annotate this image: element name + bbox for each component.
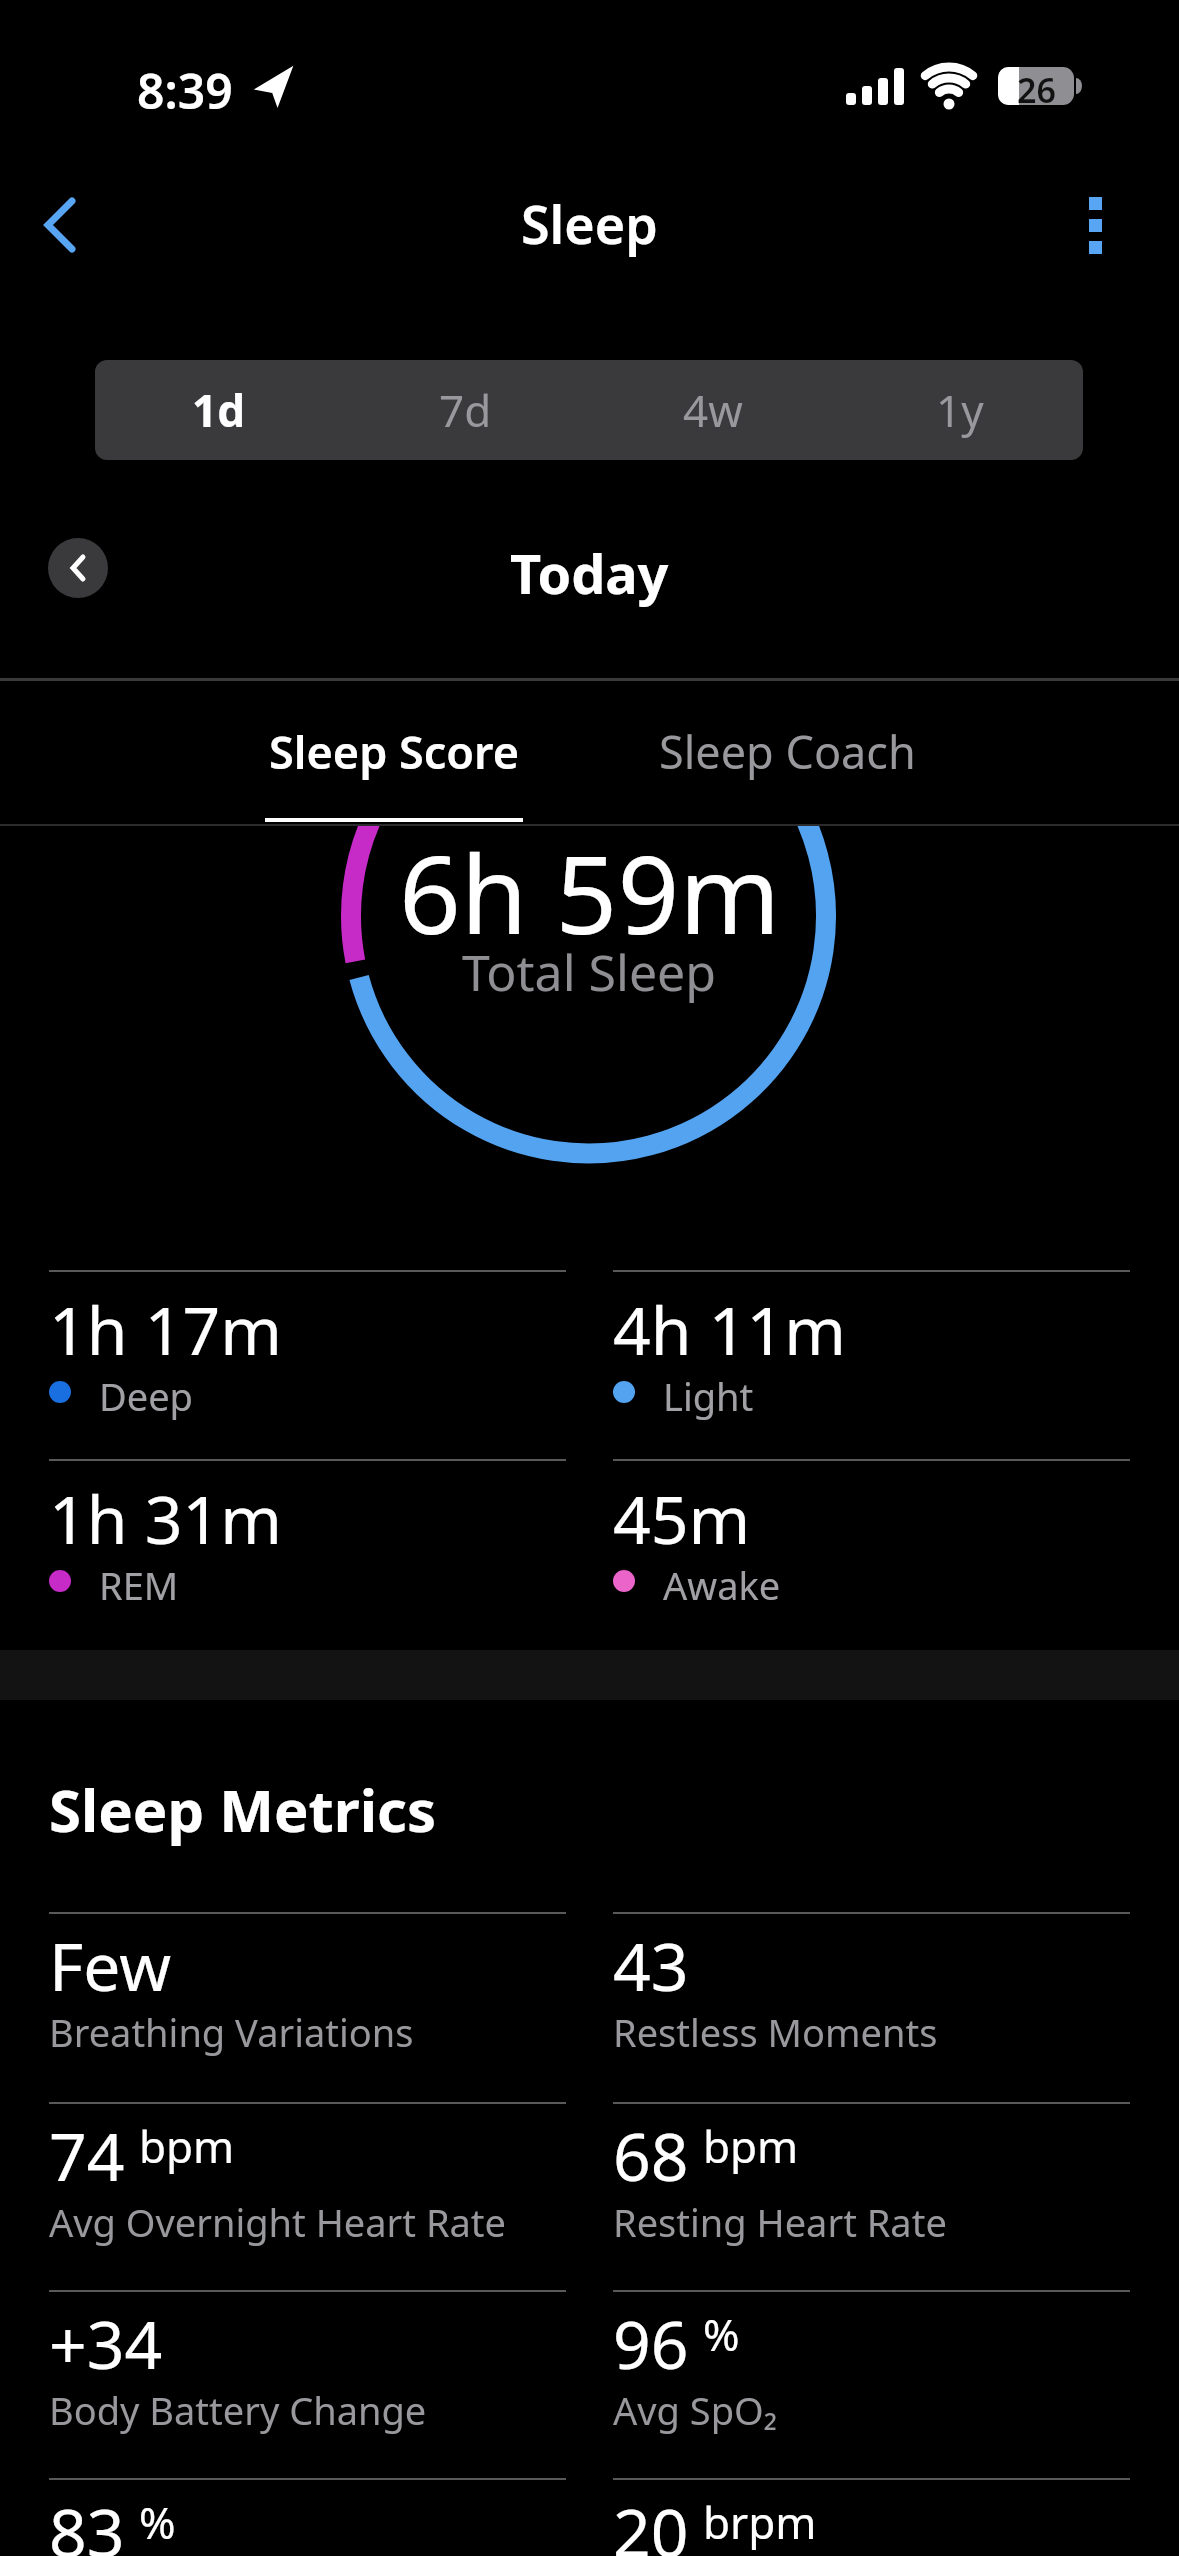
staticText: Awake (663, 1559, 781, 1603)
button[interactable]: 7d (342, 360, 589, 460)
staticText: 1d (192, 380, 245, 440)
staticText: 26 (1017, 67, 1056, 105)
staticText: Resting Heart Rate (613, 2196, 947, 2246)
button[interactable] (20, 182, 100, 268)
staticText: Deep (99, 1370, 193, 1414)
staticText: 8:39 (137, 58, 233, 118)
button[interactable]: 1d (95, 360, 342, 460)
button[interactable]: 4w (589, 360, 836, 460)
staticText: Breathing Variations (49, 2006, 414, 2056)
staticText: Sleep Coach (659, 721, 916, 782)
staticText: 4w (683, 380, 743, 440)
staticText: 4h 11m (613, 1284, 846, 1356)
staticText: Light (663, 1370, 754, 1414)
staticText: bpm (139, 2116, 235, 2176)
staticText: Total Sleep (462, 938, 717, 998)
button[interactable]: 1y (836, 360, 1083, 460)
staticText: 96 (613, 2298, 689, 2370)
staticText: 68 (613, 2110, 689, 2182)
staticText: 1h 31m (49, 1473, 282, 1545)
button[interactable]: Sleep Coach (638, 695, 936, 807)
staticText: 1y (936, 380, 984, 440)
staticText: 1h 17m (49, 1284, 282, 1356)
staticText: bpm (703, 2116, 799, 2176)
staticText: 74 (49, 2110, 125, 2182)
staticText: Sleep Score (269, 721, 520, 782)
staticText: % (139, 2492, 176, 2552)
staticText: 20 (613, 2486, 689, 2556)
staticText: Body Battery Change (49, 2384, 427, 2434)
staticText: 43 (613, 1920, 689, 1992)
staticText: Restless Moments (613, 2006, 938, 2056)
button[interactable] (1055, 182, 1135, 268)
staticText: % (703, 2304, 740, 2364)
staticText: 83 (49, 2486, 125, 2556)
staticText: Avg Overnight Heart Rate (49, 2196, 506, 2246)
staticText: +34 (49, 2298, 163, 2370)
staticText: Few (49, 1920, 172, 1992)
staticText: Sleep Metrics (49, 1770, 437, 1840)
staticText: 6h 59m (399, 826, 781, 929)
staticText: brpm (703, 2492, 817, 2552)
staticText: 45m (613, 1473, 751, 1545)
staticText: REM (99, 1559, 179, 1603)
button[interactable] (48, 538, 108, 598)
button[interactable]: Sleep Score (245, 695, 543, 807)
staticText: Today (510, 536, 669, 602)
staticText: Avg SpO₂ (613, 2384, 778, 2434)
staticText: Sleep (521, 188, 658, 250)
staticText: 7d (439, 380, 492, 440)
